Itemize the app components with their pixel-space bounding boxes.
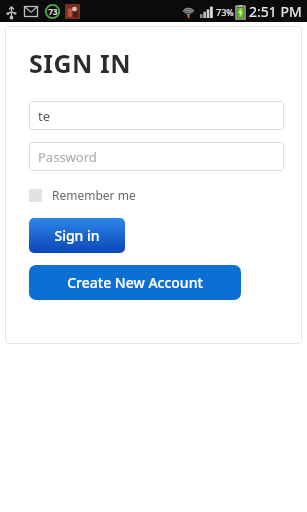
button[interactable]: Sign in bbox=[29, 218, 125, 253]
staticText: Sign in bbox=[54, 226, 100, 245]
button[interactable]: Remember me bbox=[29, 185, 136, 205]
staticText: SIGN IN bbox=[29, 46, 131, 80]
button[interactable]: te bbox=[29, 101, 284, 130]
staticText: Create New Account bbox=[67, 273, 203, 292]
staticText: Password bbox=[38, 148, 97, 166]
button[interactable]: Create New Account bbox=[29, 265, 241, 300]
staticText: te bbox=[38, 107, 51, 125]
staticText: Remember me bbox=[52, 187, 136, 203]
staticText: 2:51 PM bbox=[249, 2, 302, 21]
staticText: 73 bbox=[48, 6, 58, 17]
button[interactable]: Password bbox=[29, 142, 284, 171]
staticText: 73% bbox=[216, 6, 234, 18]
